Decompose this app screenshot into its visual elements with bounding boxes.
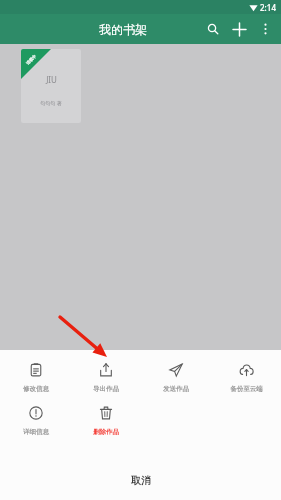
- staticText: 导出作品: [93, 385, 119, 393]
- staticText: 取消: [131, 474, 151, 487]
- staticText: 我的书架: [99, 22, 147, 37]
- button[interactable]: 导出作品: [71, 360, 141, 394]
- staticText: 发送作品: [163, 385, 189, 393]
- button[interactable]: 发送作品: [141, 360, 211, 394]
- staticText: 句句句 著: [40, 100, 62, 107]
- staticText: 删除作品: [93, 428, 119, 436]
- button[interactable]: JIU: [21, 49, 81, 123]
- button[interactable]: 修改信息: [0, 360, 71, 394]
- button[interactable]: 详细信息: [0, 403, 71, 437]
- staticText: 2:14: [260, 2, 276, 13]
- button[interactable]: Search: [200, 14, 226, 44]
- staticText: 修改信息: [23, 385, 49, 393]
- staticText: 详细信息: [23, 428, 49, 436]
- staticText: 备份至云端: [230, 385, 263, 393]
- button[interactable]: 备份至云端: [211, 360, 281, 394]
- staticText: 连载中: [25, 53, 37, 65]
- button[interactable]: Add: [226, 14, 252, 44]
- staticText: JIU: [46, 74, 57, 85]
- button[interactable]: 删除作品: [71, 403, 141, 437]
- button[interactable]: More options: [252, 14, 278, 44]
- button[interactable]: 取消: [0, 466, 281, 494]
